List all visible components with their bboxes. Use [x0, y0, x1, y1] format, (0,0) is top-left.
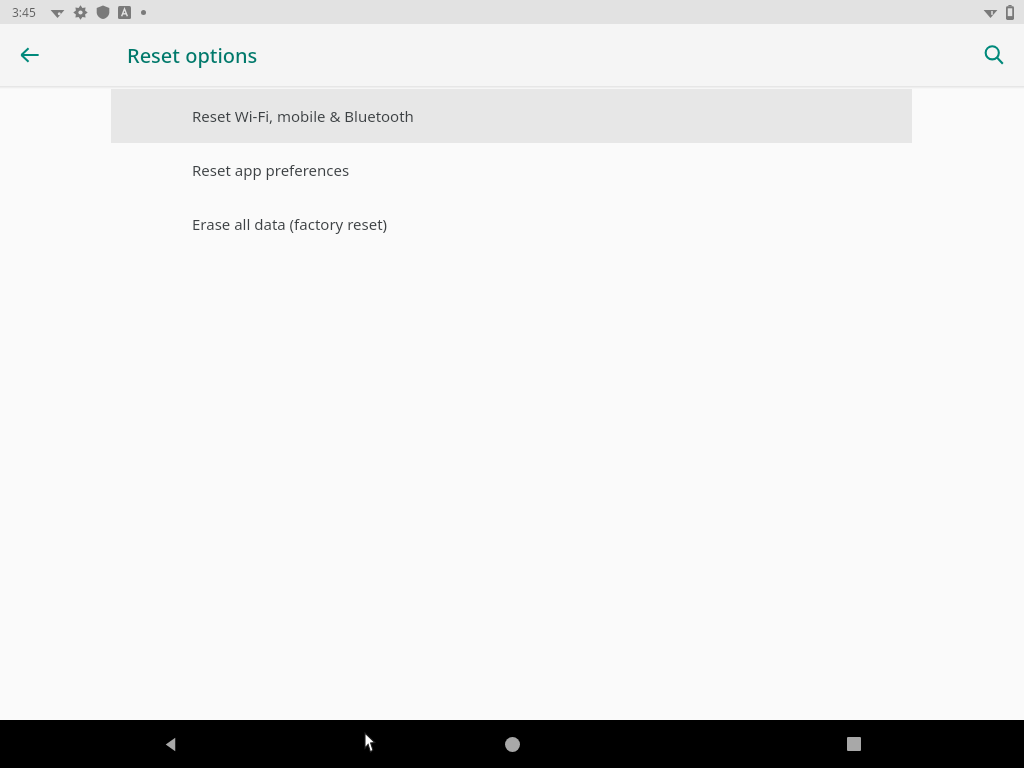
staticText: Erase all data (factory reset)	[192, 214, 388, 234]
staticText: Reset Wi-Fi, mobile & Bluetooth	[192, 106, 414, 126]
button[interactable]: Home	[342, 720, 683, 768]
button[interactable]: Back	[0, 720, 342, 768]
staticText: Reset app preferences	[192, 160, 350, 180]
button[interactable]: Reset Wi-Fi, mobile & Bluetooth	[111, 89, 912, 143]
button[interactable]: Back	[6, 31, 54, 79]
button[interactable]: Recent apps	[683, 720, 1024, 768]
staticText: 3:45	[12, 4, 36, 20]
staticText: Reset options	[127, 42, 258, 69]
button[interactable]: Reset app preferences	[111, 143, 912, 197]
button[interactable]: Erase all data (factory reset)	[111, 197, 912, 251]
button[interactable]: Search	[970, 31, 1018, 79]
